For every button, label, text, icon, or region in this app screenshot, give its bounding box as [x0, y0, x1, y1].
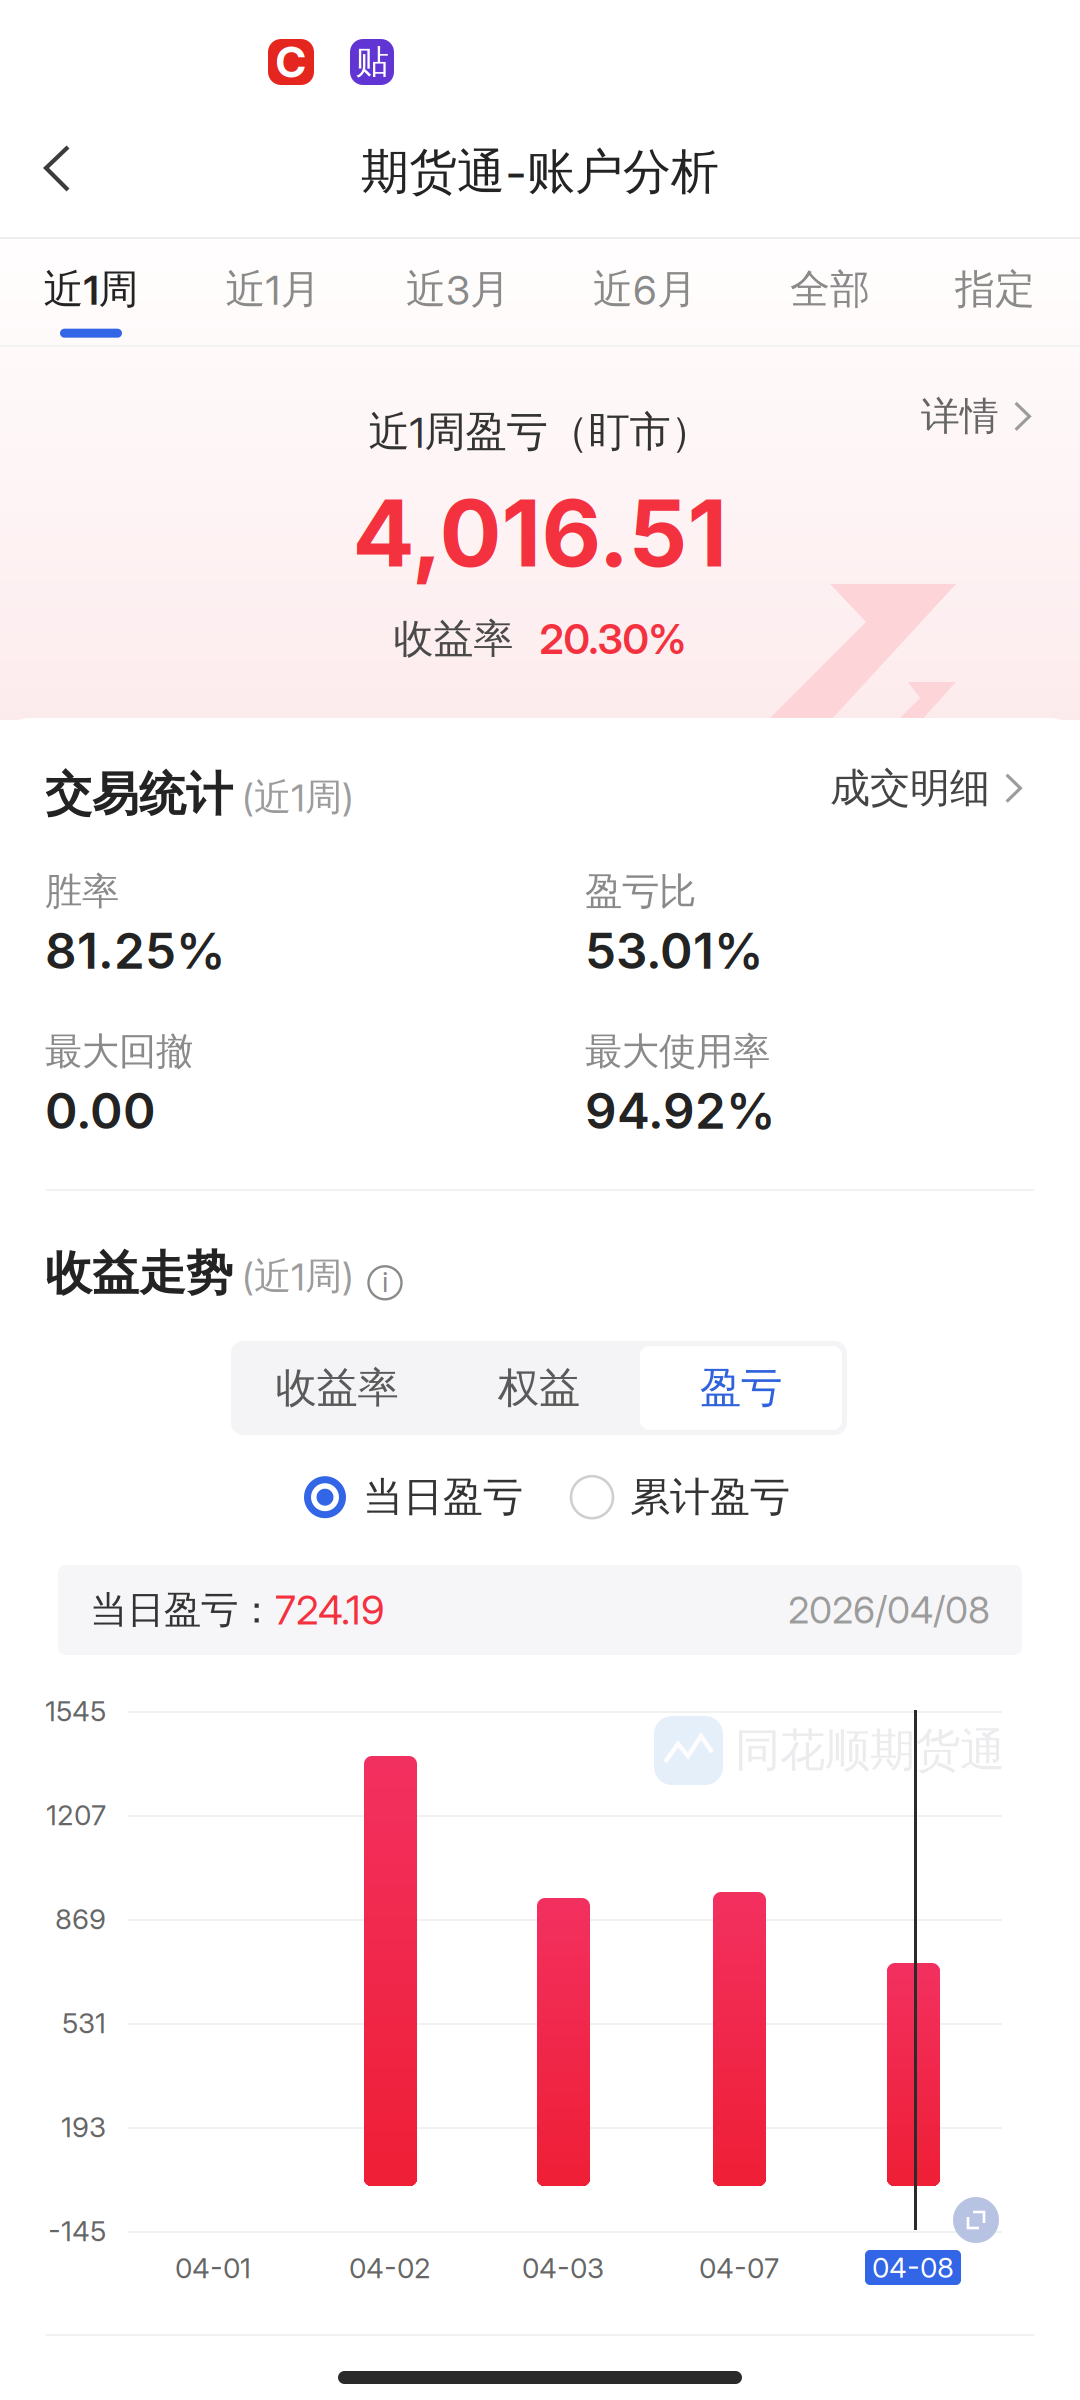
button[interactable]: 近6月	[565, 239, 725, 345]
button[interactable]: 权益	[438, 1346, 640, 1430]
button[interactable]: 近1周	[11, 239, 171, 345]
staticText: 193	[61, 2110, 106, 2144]
button[interactable]: 近3月	[378, 239, 538, 345]
staticText: i	[382, 1265, 388, 1299]
staticText: 最大使用率	[585, 1028, 770, 1075]
staticText: 4,016.51	[352, 477, 727, 589]
staticText: 当日盈亏	[363, 1472, 523, 1522]
staticText: 累计盈亏	[630, 1472, 790, 1522]
staticText: 04-03	[522, 2251, 604, 2285]
button[interactable]: 详情	[903, 376, 1050, 457]
staticText: 详情	[921, 392, 999, 441]
staticText: -145	[48, 2214, 106, 2248]
staticText: 成交明细	[830, 763, 990, 813]
button[interactable]: Back	[7, 105, 107, 233]
staticText: 04-01	[175, 2251, 251, 2285]
staticText: 收益走势	[45, 1244, 233, 1303]
staticText: 近3月	[406, 264, 510, 315]
staticText: 53.01%	[585, 921, 764, 981]
staticText: 盈亏比	[585, 868, 696, 915]
button[interactable]: 当日盈亏	[303, 1472, 523, 1522]
staticText: 贴	[355, 41, 388, 83]
button[interactable]: 收益率	[236, 1346, 438, 1430]
staticText: 2026/04/08	[788, 1587, 990, 1633]
staticText: 期货通-账户分析	[361, 142, 719, 202]
button[interactable]: 近1月	[193, 239, 353, 345]
staticText: 724.19	[275, 1586, 385, 1634]
staticText: 权益	[498, 1362, 580, 1414]
staticText: 指定	[955, 264, 1035, 315]
staticText: 近1周	[43, 264, 138, 315]
staticText: 当日盈亏：	[90, 1586, 275, 1633]
staticText: 0.00	[45, 1081, 156, 1141]
staticText: 04-02	[349, 2251, 431, 2285]
staticText: 胜率	[45, 868, 119, 915]
button[interactable]: 全部	[750, 239, 910, 345]
button[interactable]: 累计盈亏	[570, 1472, 790, 1522]
staticText: 20.30%	[539, 614, 686, 664]
staticText: 81.25%	[45, 921, 226, 981]
button[interactable]: 指定	[915, 239, 1075, 345]
staticText: 近1月	[225, 264, 320, 315]
staticText: 近6月	[593, 264, 697, 315]
staticText: 同花顺期货通	[735, 1722, 1005, 1779]
staticText: 531	[62, 2006, 106, 2040]
staticText: 交易统计	[45, 765, 233, 824]
button[interactable]: 成交明细	[812, 747, 1041, 829]
staticText: 04-07	[699, 2251, 779, 2285]
staticText: 1545	[45, 1694, 106, 1728]
button[interactable]: 盈亏	[640, 1346, 842, 1430]
staticText: 收益率	[275, 1362, 398, 1414]
staticText: (近1周)	[242, 774, 354, 821]
staticText: 94.92%	[585, 1081, 776, 1141]
staticText: C	[275, 36, 307, 88]
staticText: 最大回撤	[45, 1028, 193, 1075]
staticText: 近1周盈亏（盯市）	[368, 406, 711, 458]
staticText: 全部	[790, 264, 870, 315]
staticText: 盈亏	[700, 1362, 782, 1414]
staticText: 04-08	[872, 2251, 954, 2284]
staticText: 收益率	[393, 614, 513, 664]
staticText: (近1周)	[242, 1253, 354, 1300]
staticText: 869	[55, 1902, 106, 1936]
staticText: 1207	[46, 1798, 106, 1832]
